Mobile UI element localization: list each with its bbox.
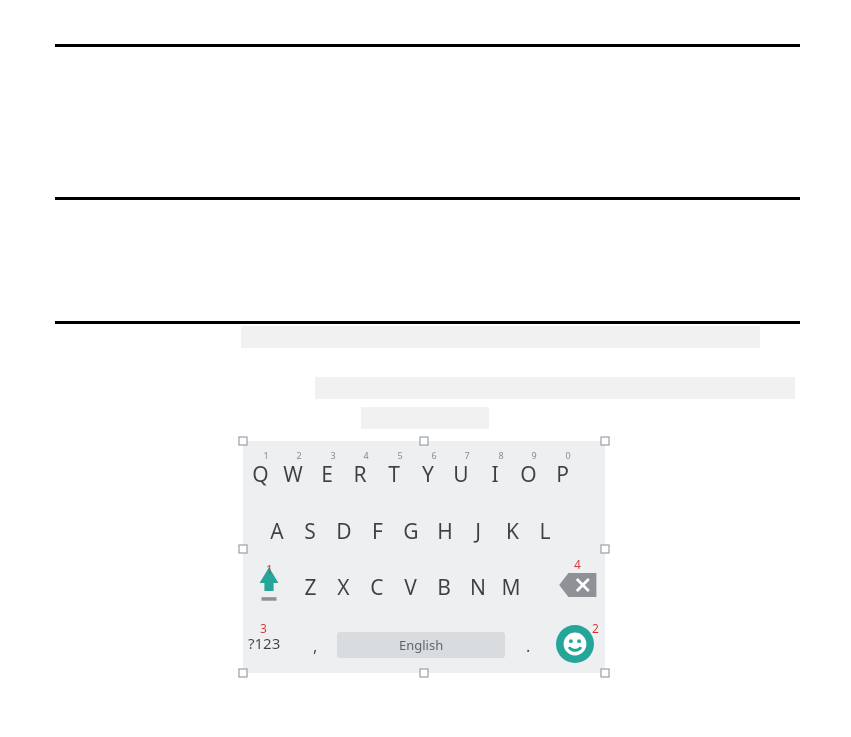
staticText: 6 xyxy=(431,449,437,461)
staticText: C xyxy=(370,573,384,602)
button[interactable]: English xyxy=(337,632,505,658)
staticText: Z xyxy=(304,573,317,602)
staticText: , xyxy=(313,635,318,657)
staticText: N xyxy=(470,573,486,602)
staticText: 2 xyxy=(592,620,599,636)
button[interactable]: ?123 xyxy=(248,630,290,656)
staticText: P xyxy=(556,460,569,489)
staticText: 1 xyxy=(263,449,269,461)
staticText: R xyxy=(353,460,367,489)
button[interactable]: Shift xyxy=(249,562,289,606)
staticText: O xyxy=(520,460,537,489)
staticText: 3 xyxy=(330,449,336,461)
staticText: I xyxy=(491,460,499,489)
staticText: E xyxy=(321,460,333,489)
button[interactable]: . xyxy=(518,634,538,658)
staticText: H xyxy=(437,517,453,546)
staticText: V xyxy=(404,573,417,602)
staticText: Q xyxy=(252,460,269,489)
staticText: ?123 xyxy=(248,633,281,653)
staticText: 4 xyxy=(363,449,369,461)
button[interactable]: , xyxy=(305,634,325,658)
staticText: U xyxy=(453,460,469,489)
staticText: 9 xyxy=(531,449,537,461)
staticText: 7 xyxy=(464,449,470,461)
staticText: A xyxy=(270,517,284,546)
staticText: B xyxy=(437,573,451,602)
staticText: D xyxy=(336,517,352,546)
staticText: T xyxy=(388,460,400,489)
staticText: 0 xyxy=(565,449,571,461)
staticText: 2 xyxy=(296,449,302,461)
staticText: W xyxy=(283,460,303,489)
button[interactable]: Delete xyxy=(558,570,598,600)
staticText: F xyxy=(372,517,383,546)
staticText: English xyxy=(399,636,444,654)
staticText: 1 xyxy=(266,561,273,577)
staticText: K xyxy=(506,517,519,546)
staticText: 5 xyxy=(397,449,403,461)
staticText: X xyxy=(337,573,350,602)
staticText: L xyxy=(539,517,551,546)
staticText: . xyxy=(526,635,531,657)
staticText: Y xyxy=(422,460,434,489)
staticText: M xyxy=(501,573,521,602)
staticText: 8 xyxy=(498,449,504,461)
staticText: J xyxy=(475,517,481,546)
button[interactable]: Emoji xyxy=(556,625,594,663)
staticText: 3 xyxy=(260,620,267,636)
staticText: S xyxy=(304,517,316,546)
staticText: G xyxy=(403,517,419,546)
staticText: 4 xyxy=(574,556,581,572)
